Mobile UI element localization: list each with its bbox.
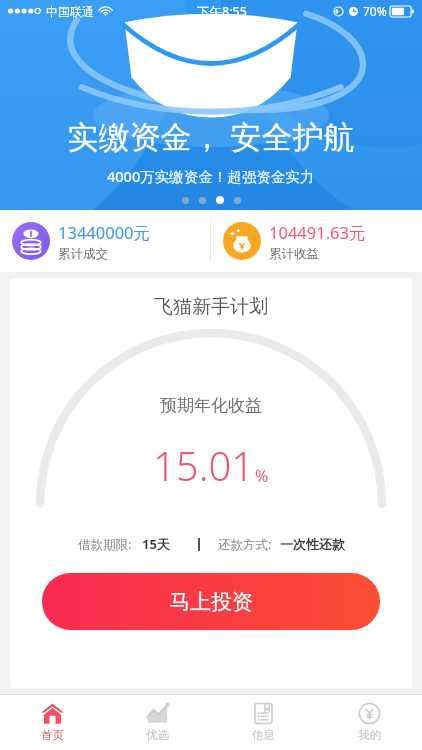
staticText: 15.01 [153, 438, 255, 492]
button[interactable]: 信息 [210, 694, 316, 750]
button[interactable]: 我的 [316, 694, 422, 750]
staticText: 下午8:55 [197, 3, 247, 20]
button[interactable]: 马上投资 [42, 573, 380, 630]
staticText: 还款方式: [218, 536, 272, 553]
staticText: 信息 [252, 728, 275, 742]
staticText: 预期年化收益 [160, 395, 262, 416]
button[interactable]: 首页 [0, 694, 105, 750]
staticText: 4000万实缴资金！超强资金实力 [107, 166, 315, 186]
staticText: 累计成交 [58, 246, 108, 262]
staticText: 马上投资 [169, 589, 253, 615]
staticText: 实缴资金， 安全护航 [67, 115, 355, 157]
staticText: 首页 [41, 728, 64, 742]
staticText: % [255, 465, 269, 487]
staticText: 70% [363, 3, 387, 19]
staticText: 13440000元 [58, 221, 151, 244]
staticText: 104491.63元 [269, 221, 366, 244]
staticText: 中国联通 [46, 4, 94, 19]
staticText: 15天 [142, 535, 170, 553]
staticText: 借款期限: [78, 536, 132, 553]
staticText: 飞猫新手计划 [154, 295, 268, 319]
button[interactable]: 13440000元 [0, 210, 210, 272]
button[interactable]: 优选 [105, 694, 210, 750]
button[interactable]: 104491.63元 [211, 210, 422, 272]
staticText: 一次性还款 [280, 536, 345, 552]
staticText: 优选 [146, 728, 169, 742]
staticText: 累计收益 [269, 246, 319, 262]
staticText: 我的 [358, 728, 381, 742]
